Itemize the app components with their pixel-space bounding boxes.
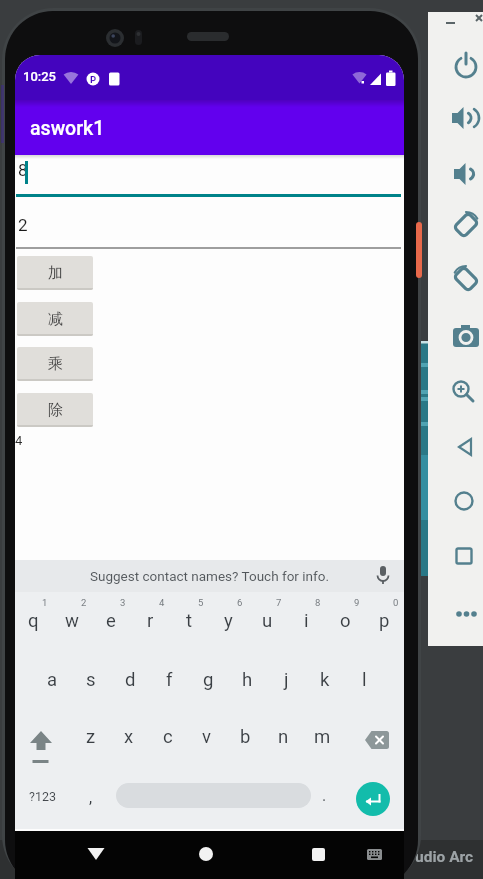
staticText: 加	[48, 264, 63, 283]
staticText: s	[86, 669, 96, 691]
staticText: t	[186, 610, 193, 632]
button[interactable]	[312, 848, 325, 861]
button[interactable]: s	[78, 666, 104, 694]
staticText: i	[304, 610, 309, 632]
button[interactable]: z	[78, 723, 104, 751]
staticText: h	[242, 669, 253, 691]
staticText: 除	[48, 401, 63, 420]
button[interactable]: d	[117, 666, 143, 694]
staticText: 8	[18, 160, 28, 180]
button[interactable]: .	[312, 783, 336, 807]
staticText: 2	[18, 215, 28, 235]
button[interactable]: j	[273, 666, 299, 694]
button[interactable]: t	[176, 608, 202, 634]
button[interactable]: e	[98, 608, 124, 634]
button[interactable]	[15, 560, 404, 592]
button[interactable]	[30, 731, 52, 764]
button[interactable]: p	[371, 608, 397, 634]
staticText: x	[124, 726, 134, 748]
button[interactable]	[454, 435, 478, 459]
button[interactable]: a	[39, 666, 65, 694]
button[interactable]: n	[270, 723, 296, 751]
button[interactable]: 除	[17, 393, 93, 427]
staticText: 1	[42, 597, 48, 608]
button[interactable]: ,	[79, 785, 103, 809]
button[interactable]	[454, 608, 478, 620]
staticText: k	[320, 669, 330, 691]
button[interactable]: q	[20, 608, 46, 634]
button[interactable]: w	[59, 608, 85, 634]
button[interactable]: 加	[17, 256, 93, 290]
staticText: y	[224, 610, 233, 632]
button[interactable]: i	[293, 608, 319, 634]
button[interactable]	[452, 265, 480, 293]
staticText: 4	[159, 597, 165, 608]
button[interactable]: m	[309, 723, 335, 751]
button[interactable]: k	[312, 666, 338, 694]
button[interactable]: h	[234, 666, 260, 694]
button[interactable]: u	[254, 608, 280, 634]
staticText: r	[147, 610, 154, 632]
button[interactable]: r	[137, 608, 163, 634]
staticText: c	[163, 726, 173, 748]
button[interactable]	[87, 847, 105, 861]
staticText: 10:25	[23, 69, 57, 84]
staticText: f	[166, 669, 173, 691]
staticText: z	[86, 726, 96, 748]
button[interactable]	[356, 782, 390, 816]
button[interactable]: f	[156, 666, 182, 694]
button[interactable]	[199, 847, 213, 861]
staticText: 7	[276, 597, 282, 608]
button[interactable]: x	[116, 723, 142, 751]
staticText: 4	[15, 433, 23, 448]
staticText: g	[203, 669, 214, 691]
staticText: e	[106, 610, 116, 632]
button[interactable]	[453, 325, 479, 349]
staticText: .	[322, 786, 327, 805]
button[interactable]: g	[195, 666, 221, 694]
button[interactable]: y	[215, 608, 241, 634]
staticText: 8	[315, 597, 321, 608]
staticText: 2	[81, 597, 87, 608]
button[interactable]	[453, 53, 479, 79]
button[interactable]: c	[155, 723, 181, 751]
staticText: w	[65, 610, 79, 632]
button[interactable]	[365, 731, 389, 749]
staticText: ,	[89, 788, 93, 807]
button[interactable]	[452, 489, 476, 513]
staticText: ?123	[29, 789, 56, 804]
button[interactable]	[454, 162, 480, 186]
button[interactable]: l	[351, 666, 377, 694]
staticText: p	[379, 610, 390, 632]
button[interactable]: v	[193, 723, 219, 751]
staticText: P	[90, 74, 97, 85]
staticText: 9	[354, 597, 360, 608]
staticText: n	[278, 726, 289, 748]
staticText: o	[340, 610, 351, 632]
staticText: v	[202, 726, 211, 748]
staticText: udio Arc	[415, 848, 474, 866]
staticText: b	[240, 726, 251, 748]
button[interactable]	[452, 211, 480, 239]
staticText: Suggest contact names? Touch for info.	[90, 568, 329, 584]
staticText: a	[47, 669, 58, 691]
button[interactable]	[451, 379, 477, 405]
staticText: 3	[120, 597, 126, 608]
button[interactable]: 乘	[17, 347, 93, 381]
button[interactable]	[452, 544, 476, 568]
button[interactable]	[452, 106, 480, 130]
staticText: l	[362, 669, 367, 691]
button[interactable]	[116, 783, 311, 808]
staticText: j	[284, 669, 289, 691]
button[interactable]: b	[232, 723, 258, 751]
button[interactable]: ?123	[27, 787, 57, 805]
staticText: d	[125, 669, 136, 691]
button[interactable]: 减	[17, 302, 93, 336]
button[interactable]	[375, 566, 391, 586]
button[interactable]	[367, 849, 382, 860]
button[interactable]: o	[332, 608, 358, 634]
staticText: u	[262, 610, 273, 632]
staticText: aswork1	[30, 117, 105, 140]
